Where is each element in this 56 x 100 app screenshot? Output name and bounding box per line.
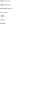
staticText: Daily Forecast xyxy=(0,4,10,6)
staticText: Donate xyxy=(0,23,5,24)
staticText: Settings xyxy=(0,15,5,17)
staticText: About xyxy=(0,19,4,21)
staticText: Hourly Forecast xyxy=(0,7,12,9)
staticText: Overview xyxy=(0,11,7,13)
staticText: Daily Forecast xyxy=(0,0,10,2)
